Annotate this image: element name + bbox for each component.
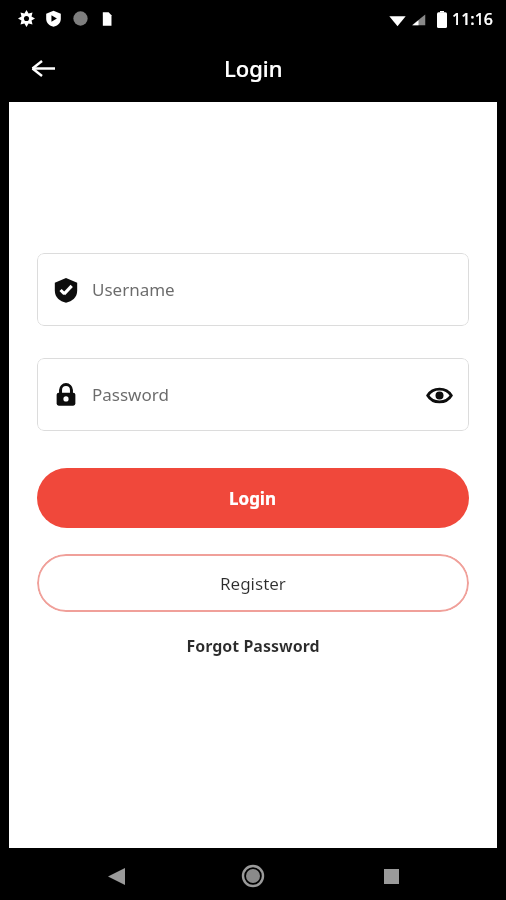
button[interactable]: Back	[94, 854, 138, 898]
staticText: Username	[92, 278, 455, 301]
button[interactable]: Login	[37, 468, 469, 528]
button[interactable]: Password	[37, 358, 469, 431]
button[interactable]: Register	[37, 554, 469, 612]
staticText: Forgot Password	[186, 635, 320, 657]
staticText: Register	[220, 572, 286, 595]
button[interactable]: Forgot Password	[174, 628, 332, 664]
staticText: Password	[92, 383, 423, 406]
button[interactable]: Recents	[369, 854, 413, 898]
staticText: 11:16	[452, 8, 493, 30]
button[interactable]: Home	[231, 854, 275, 898]
button[interactable]: Back	[20, 45, 66, 91]
button[interactable]: Username	[37, 253, 469, 326]
button[interactable]: Show password	[423, 379, 455, 411]
staticText: Login	[224, 53, 283, 83]
staticText: Login	[229, 487, 277, 510]
